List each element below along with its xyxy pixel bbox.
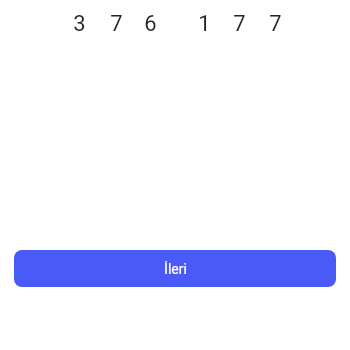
staticText: 7	[269, 11, 282, 37]
button[interactable]: İleri	[14, 250, 336, 287]
staticText: 3	[73, 11, 86, 37]
staticText: İleri	[164, 261, 187, 277]
staticText: 1	[198, 11, 211, 37]
staticText: 7	[233, 11, 246, 37]
staticText: 7	[110, 11, 123, 37]
staticText: 6	[144, 11, 157, 37]
